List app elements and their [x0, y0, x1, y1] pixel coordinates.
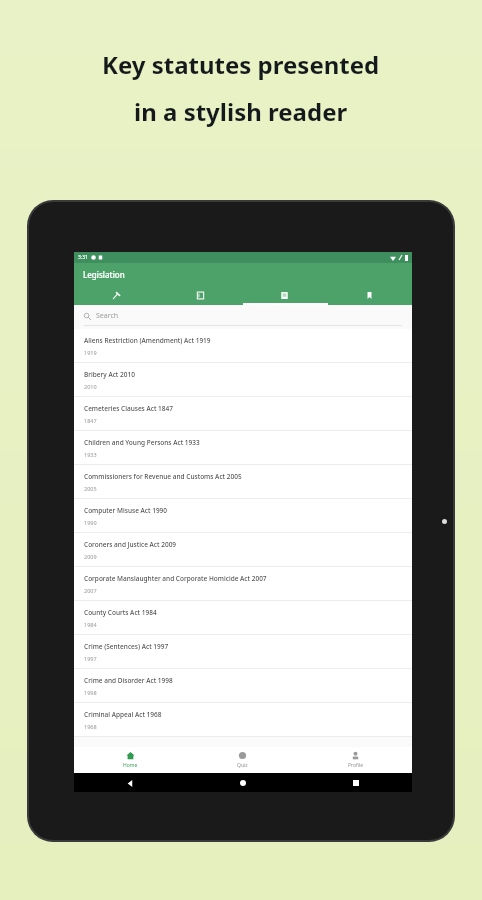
button[interactable]: Cemeteries Clauses Act 1847 [74, 397, 412, 430]
button[interactable]: Bribery Act 2010 [74, 363, 412, 396]
button[interactable]: Aliens Restriction (Amendment) Act 1919 [74, 329, 412, 362]
staticText: in a stylish reader [134, 95, 348, 128]
staticText: Computer Misuse Act 1990 [84, 506, 168, 515]
staticText: Search [96, 311, 119, 321]
staticText: Crime (Sentences) Act 1997 [84, 642, 169, 651]
button[interactable]: Quiz [186, 747, 299, 773]
staticText: 2010 [84, 383, 97, 390]
staticText: County Courts Act 1984 [84, 608, 157, 617]
staticText: Commissioners for Revenue and Customs Ac… [84, 472, 242, 481]
button[interactable]: Profile [299, 747, 412, 773]
button[interactable]: Crime and Disorder Act 1998 [74, 669, 412, 702]
staticText: Aliens Restriction (Amendment) Act 1919 [84, 336, 211, 345]
button[interactable]: Books [158, 285, 242, 305]
button[interactable]: Coroners and Justice Act 2009 [74, 533, 412, 566]
staticText: Children and Young Persons Act 1933 [84, 438, 200, 447]
button[interactable]: County Courts Act 1984 [74, 601, 412, 634]
staticText: Quiz [237, 762, 248, 769]
staticText: Corporate Manslaughter and Corporate Hom… [84, 574, 267, 583]
staticText: Legislation [83, 269, 125, 280]
button[interactable]: Back [123, 776, 137, 790]
staticText: 1990 [84, 519, 97, 526]
staticText: 1998 [84, 689, 97, 696]
button[interactable]: Corporate Manslaughter and Corporate Hom… [74, 567, 412, 600]
staticText: 3:31 [78, 254, 88, 261]
staticText: Crime and Disorder Act 1998 [84, 676, 173, 685]
staticText: Home [123, 762, 138, 769]
staticText: Bribery Act 2010 [84, 370, 135, 379]
button[interactable]: Children and Young Persons Act 1933 [74, 431, 412, 464]
button[interactable]: Notes [242, 285, 327, 305]
staticText: 1919 [84, 349, 97, 356]
staticText: 2009 [84, 553, 97, 560]
staticText: Key statutes presented [102, 48, 380, 81]
button[interactable]: Legislation [74, 285, 158, 305]
button[interactable]: Computer Misuse Act 1990 [74, 499, 412, 532]
button[interactable]: Crime (Sentences) Act 1997 [74, 635, 412, 668]
button[interactable]: Home [236, 776, 250, 790]
staticText: 1997 [84, 655, 97, 662]
staticText: Cemeteries Clauses Act 1847 [84, 404, 173, 413]
staticText: Profile [348, 762, 364, 769]
button[interactable]: Commissioners for Revenue and Customs Ac… [74, 465, 412, 498]
staticText: 1984 [84, 621, 97, 628]
button[interactable]: Search [74, 305, 412, 329]
staticText: 1847 [84, 417, 97, 424]
button[interactable]: Recents [349, 776, 363, 790]
staticText: Criminal Appeal Act 1968 [84, 710, 162, 719]
button[interactable]: Criminal Appeal Act 1968 [74, 703, 412, 736]
button[interactable]: Home [74, 747, 186, 773]
button[interactable]: Bookmarks [327, 285, 412, 305]
staticText: 1933 [84, 451, 97, 458]
staticText: 1968 [84, 723, 97, 730]
staticText: Coroners and Justice Act 2009 [84, 540, 177, 549]
staticText: 2007 [84, 587, 97, 594]
staticText: 2005 [84, 485, 97, 492]
